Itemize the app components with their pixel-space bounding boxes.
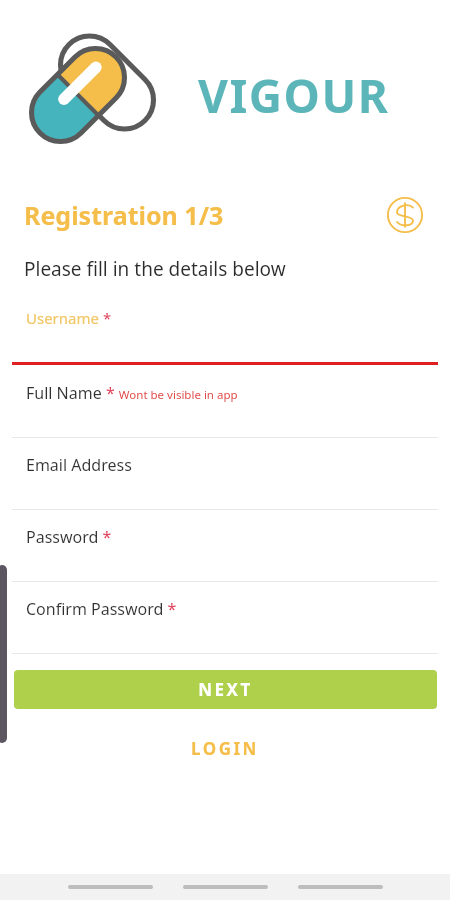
staticText: NEXT	[198, 678, 253, 701]
button[interactable]: Confirm Password *	[0, 582, 450, 654]
button[interactable]: Full Name * Wont be visible in app	[0, 366, 450, 438]
button[interactable]: Navigation	[183, 885, 268, 889]
staticText: Username *	[26, 308, 112, 328]
staticText: LOGIN	[191, 737, 259, 760]
staticText: Please fill in the details below	[24, 256, 286, 282]
button[interactable]: NEXT	[14, 670, 437, 709]
button[interactable]: LOGIN	[155, 730, 295, 766]
staticText: Full Name * Wont be visible in app	[26, 382, 238, 404]
button[interactable]: Email Address	[0, 438, 450, 510]
staticText: Email Address	[26, 454, 132, 476]
button[interactable]: Coins	[383, 193, 427, 237]
button[interactable]: Username *	[0, 292, 450, 364]
staticText: VIGOUR	[198, 64, 390, 127]
staticText: Registration 1/3	[24, 198, 224, 232]
button[interactable]: Navigation	[298, 885, 383, 889]
staticText: Confirm Password *	[26, 598, 177, 620]
button[interactable]: Password *	[0, 510, 450, 582]
staticText: Password *	[26, 526, 112, 548]
button[interactable]: Navigation	[68, 885, 153, 889]
